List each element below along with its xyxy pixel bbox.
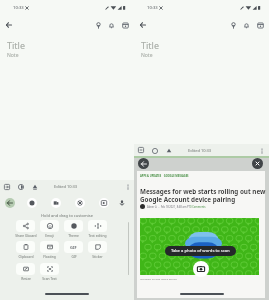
button[interactable]: Back [5,198,15,208]
staticText: Floating [43,254,56,258]
button[interactable]: More options [257,146,267,156]
button[interactable]: Tool 4 [99,198,109,208]
button[interactable]: Pin [92,19,104,31]
button[interactable]: Reminder [105,19,117,31]
staticText: Text editing [88,233,107,237]
staticText: GIF [71,254,77,258]
button[interactable]: Insert [136,145,146,155]
button[interactable] [40,241,59,253]
staticText: 10:33 [13,5,24,11]
button[interactable]: Voice input [117,198,127,208]
button[interactable] [64,220,83,232]
button[interactable]: Back [137,19,149,31]
staticText: Scan Text [42,276,57,280]
button[interactable] [88,220,107,232]
button[interactable]: More options [123,182,133,192]
staticText: Hold and drag to customise [0,213,134,218]
staticText: Note [7,52,19,59]
button[interactable]: Tool 3 [75,198,85,208]
staticText: Resize [21,276,31,280]
staticText: Theme [68,233,79,237]
staticText: Sticker [92,254,103,258]
button[interactable]: Format [30,182,40,192]
button[interactable]: Back [138,158,149,169]
staticText: Edited 10:33 [188,148,212,153]
staticText: Messages for web device pairing [140,277,177,280]
staticText: Note [141,52,153,59]
button[interactable]: Tool 1 [27,198,37,208]
button[interactable]: Archive [254,19,266,31]
button[interactable] [40,263,59,275]
button[interactable]: Back [3,19,15,31]
staticText: Abner Li - Feb 18 2021, 8:48 am PT [147,205,191,209]
staticText: Clipboard [18,254,34,258]
staticText: 0 Comments [190,205,206,209]
button[interactable]: Capture photo [193,261,209,277]
staticText: Title [7,39,25,51]
button[interactable]: Insert [2,182,12,192]
staticText: Edited 10:33 [54,184,78,189]
button[interactable] [88,241,107,253]
staticText: Google Account device pairing [140,195,236,204]
button[interactable] [16,241,35,253]
button[interactable] [16,220,35,232]
button[interactable]: Reminder [240,19,252,31]
button[interactable]: Pin [227,19,239,31]
button[interactable] [40,220,59,232]
staticText: Title [141,39,159,51]
button[interactable]: GIF [64,241,83,253]
button[interactable]: Archive [119,19,131,31]
button[interactable]: Format [164,146,174,156]
button[interactable]: Close [252,158,263,169]
button[interactable] [16,263,35,275]
staticText: Messages for web starts rolling out new [140,187,266,196]
staticText: 10:33 [147,5,158,11]
button[interactable]: Tool 2 [51,198,61,208]
staticText: APPS & UPDATES GOOGLE MESSAGES [140,174,189,178]
button[interactable]: Palette [16,182,26,192]
button[interactable]: Palette [150,146,160,156]
staticText: Emoji [45,233,54,237]
staticText: Take a photo of words to scan [171,248,230,254]
staticText: GIF [70,245,77,250]
staticText: Share Gboard [15,233,37,237]
